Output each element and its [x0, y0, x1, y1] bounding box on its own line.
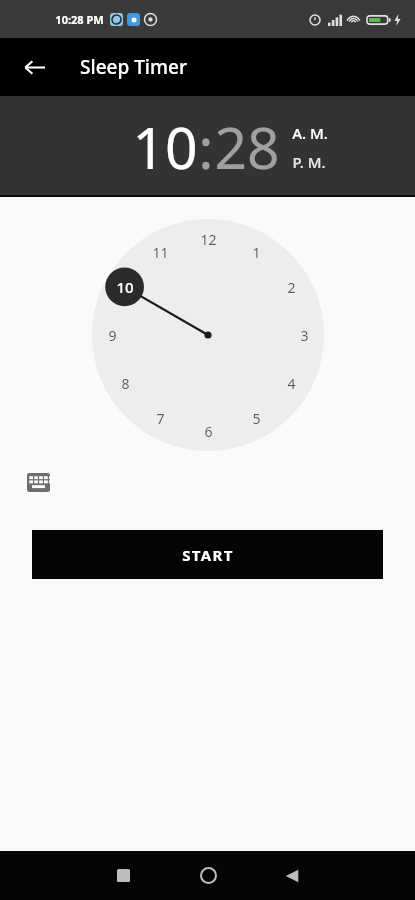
button[interactable]: 10: [132, 108, 198, 186]
staticText: 5: [252, 409, 261, 428]
staticText: 4: [287, 374, 296, 393]
button[interactable]: START: [32, 530, 383, 579]
button[interactable]: Recent apps: [98, 851, 148, 900]
button[interactable]: Switch to keyboard input: [26, 471, 50, 493]
staticText: START: [182, 545, 234, 565]
button[interactable]: A. M.: [292, 123, 328, 143]
staticText: 9: [108, 326, 117, 345]
staticText: A. M.: [292, 123, 328, 143]
staticText: 10: [116, 277, 134, 297]
staticText: 3: [300, 326, 309, 345]
staticText: 11: [152, 243, 169, 262]
staticText: 7: [156, 409, 165, 428]
button[interactable]: P. M.: [292, 152, 326, 172]
staticText: 28: [214, 108, 280, 186]
button[interactable]: 28: [214, 108, 280, 186]
button[interactable]: Home: [183, 851, 233, 900]
button[interactable]: Back: [267, 851, 317, 900]
staticText: 6: [204, 422, 213, 441]
staticText: 2: [287, 278, 296, 297]
staticText: 12: [200, 230, 217, 249]
staticText: P. M.: [292, 152, 326, 172]
staticText: Sleep Timer: [80, 54, 187, 80]
button[interactable]: Back: [12, 45, 56, 89]
staticText: 1: [252, 243, 261, 262]
staticText: 10:28 PM: [55, 12, 104, 27]
staticText: 8: [121, 374, 130, 393]
staticText: 10: [132, 108, 198, 186]
staticText: :: [198, 108, 214, 186]
